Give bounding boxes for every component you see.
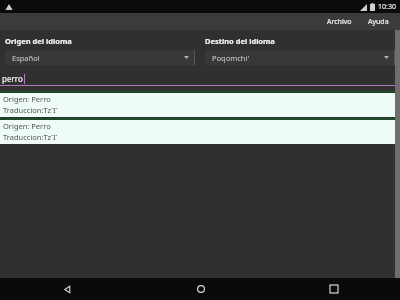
button[interactable]: Ayuda [365,15,392,29]
button[interactable]: Origen: Perro [0,118,400,144]
staticText: perro [2,73,23,84]
staticText: Ayuda [368,17,389,27]
button[interactable]: Recent apps [267,278,400,300]
staticText: Traduccion:Tz`I` [3,132,58,142]
button[interactable]: Archivo [324,15,355,29]
staticText: Español [12,53,40,63]
staticText: Archivo [327,17,352,27]
staticText: Origen del idioma [5,36,72,46]
button[interactable]: Poqomchi' [205,50,395,65]
button[interactable]: perro [0,71,400,85]
staticText: Destino del idioma [205,36,275,46]
staticText: Origen: Perro [3,121,51,131]
button[interactable]: Home [134,278,267,300]
staticText: Origen: Perro [3,94,51,104]
staticText: Traduccion:Tz`I` [3,105,58,115]
staticText: 10:30 [378,2,396,12]
button[interactable]: Back [0,278,134,300]
button[interactable]: Español [5,50,195,65]
button[interactable]: Origen: Perro [0,91,400,117]
staticText: Poqomchi' [212,53,250,63]
